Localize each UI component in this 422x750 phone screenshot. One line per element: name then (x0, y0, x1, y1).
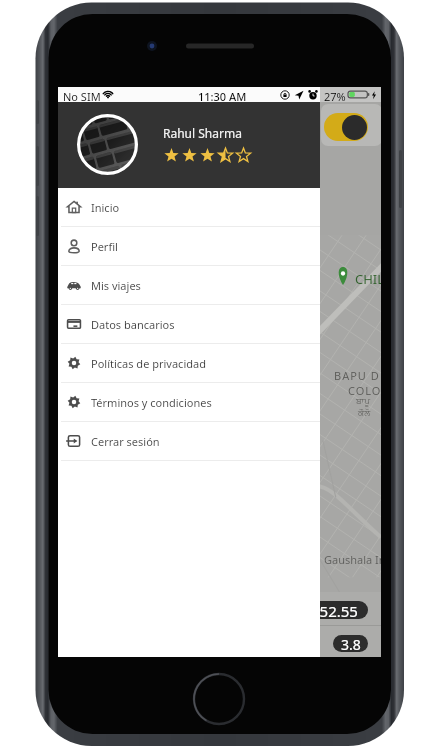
button[interactable]: Inicio (58, 188, 320, 226)
staticText: COLO (348, 383, 381, 398)
staticText: Inicio (91, 200, 120, 215)
staticText: BAPU D (334, 368, 380, 383)
staticText: Cerrar sesión (91, 434, 160, 449)
staticText: ਬਾਪੂ (356, 397, 370, 406)
staticText: 3.8 (341, 635, 361, 652)
staticText: Datos bancarios (91, 317, 175, 332)
staticText: Gaushala In (324, 552, 381, 567)
staticText: Perfil (91, 239, 118, 254)
button[interactable]: Políticas de privacidad (58, 344, 320, 382)
staticText: 27% (324, 89, 346, 104)
staticText: Políticas de privacidad (91, 356, 206, 371)
button[interactable]: Términos y condiciones (58, 383, 320, 421)
staticText: ਕੌਲੋ (358, 409, 371, 418)
button[interactable]: Mis viajes (58, 266, 320, 304)
staticText: 752.55 (311, 601, 358, 619)
staticText: 11:30 AM (198, 89, 247, 104)
staticText: Mis viajes (91, 278, 141, 293)
staticText: CHIL (355, 270, 381, 288)
button[interactable]: Perfil (58, 227, 320, 265)
button[interactable]: Toggle availability (324, 113, 368, 141)
button[interactable]: Datos bancarios (58, 305, 320, 343)
staticText: Términos y condiciones (91, 395, 212, 410)
button[interactable]: Cerrar sesión (58, 422, 320, 460)
staticText: Rahul Sharma (163, 125, 242, 141)
staticText: No SIM (63, 89, 101, 104)
